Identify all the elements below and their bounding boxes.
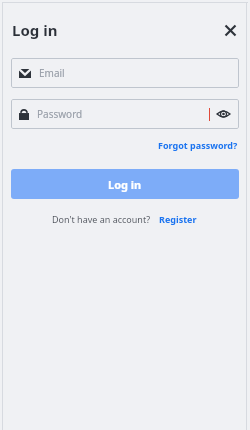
- staticText: Log in: [108, 177, 142, 192]
- button[interactable]: Email: [11, 58, 239, 88]
- staticText: Register: [159, 213, 197, 225]
- button[interactable]: Register: [158, 211, 198, 227]
- button[interactable]: Password: [11, 99, 239, 129]
- button[interactable]: Close: [217, 17, 243, 43]
- staticText: Don't have an account?: [52, 213, 151, 225]
- button[interactable]: Show password: [215, 106, 231, 122]
- button[interactable]: Forgot password?: [157, 137, 239, 153]
- staticText: Password: [37, 107, 83, 121]
- staticText: Email: [39, 66, 65, 80]
- staticText: Log in: [12, 20, 58, 40]
- button[interactable]: Log in: [11, 169, 239, 199]
- staticText: Forgot password?: [158, 139, 238, 151]
